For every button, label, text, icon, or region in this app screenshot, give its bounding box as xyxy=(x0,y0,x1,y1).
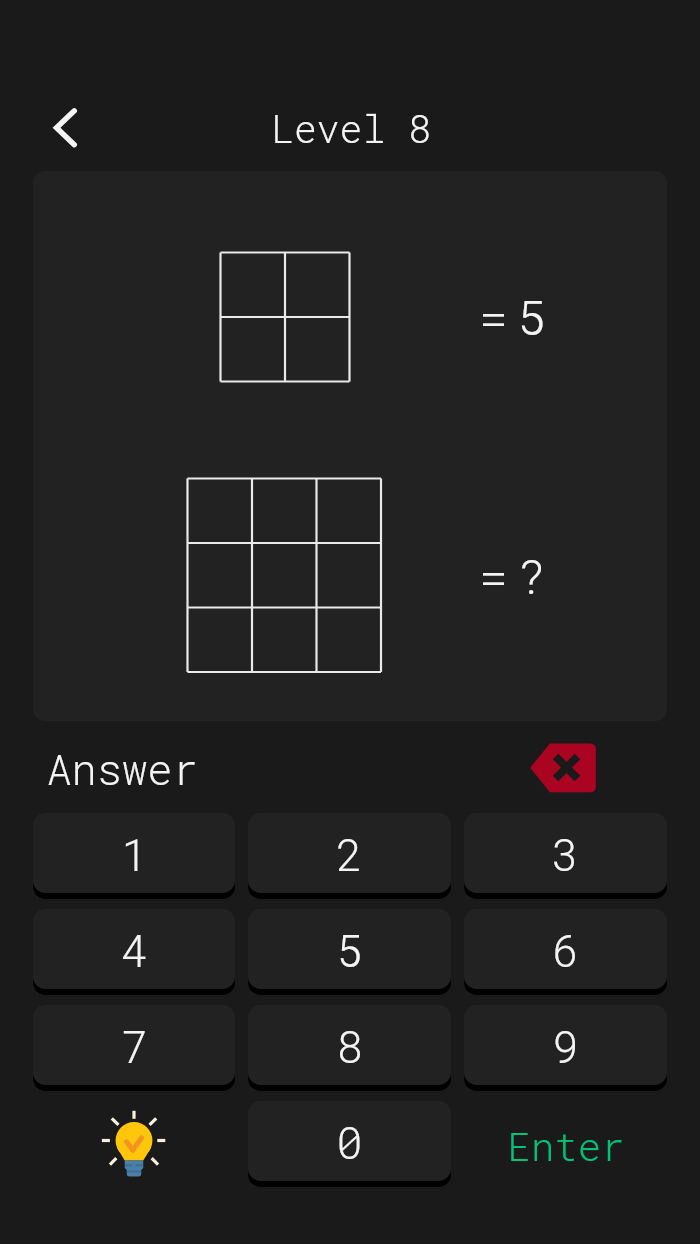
staticText: 9 xyxy=(552,1017,579,1075)
button[interactable]: 0 xyxy=(248,1101,451,1181)
staticText: Answer xyxy=(46,741,198,796)
staticText: 5 xyxy=(517,285,546,348)
button[interactable]: Hint xyxy=(33,1101,235,1181)
staticText: 8 xyxy=(336,1017,363,1075)
button[interactable]: 2 xyxy=(248,813,451,893)
staticText: 0 xyxy=(336,1113,363,1171)
staticText: 1 xyxy=(121,825,148,883)
staticText: 6 xyxy=(552,921,579,979)
button[interactable]: Enter xyxy=(464,1101,667,1181)
button[interactable]: 8 xyxy=(248,1005,451,1085)
button[interactable]: 6 xyxy=(464,909,667,989)
button[interactable]: Back xyxy=(23,85,107,169)
button[interactable]: 1 xyxy=(33,813,235,893)
button[interactable]: 4 xyxy=(33,909,235,989)
staticText: 7 xyxy=(121,1017,148,1075)
staticText: ? xyxy=(517,544,546,607)
button[interactable]: 3 xyxy=(464,813,667,893)
button[interactable]: 5 xyxy=(248,909,451,989)
staticText: 3 xyxy=(552,825,579,883)
staticText: = xyxy=(479,544,508,607)
staticText: = xyxy=(479,285,508,348)
staticText: 4 xyxy=(121,921,148,979)
button[interactable]: Backspace xyxy=(522,735,604,801)
button[interactable]: 9 xyxy=(464,1005,667,1085)
staticText: 2 xyxy=(336,825,363,883)
staticText: Level 8 xyxy=(271,103,431,153)
staticText: Enter xyxy=(507,1120,625,1171)
staticText: 5 xyxy=(336,921,363,979)
button[interactable]: 7 xyxy=(33,1005,235,1085)
